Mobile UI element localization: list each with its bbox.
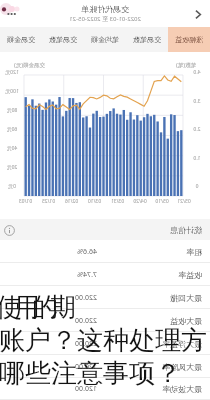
staticText: 04/20 (129, 198, 151, 205)
staticText: 7.74% (77, 270, 97, 280)
staticText: 最大回撤 (170, 293, 202, 303)
button[interactable]: 涨幅收益 (168, 27, 210, 52)
staticText: 220.00 (75, 339, 97, 349)
staticText: 交易代付账单 (81, 4, 129, 14)
staticText: 01/03 (14, 198, 37, 205)
staticText: 最大波动率 (162, 384, 202, 394)
staticText: 4.0 (184, 69, 210, 76)
staticText: 01/25 (37, 198, 60, 205)
staticText: 46.6% (77, 247, 97, 257)
staticText: 220.00 (75, 293, 97, 303)
staticText: 交易金额(元) (14, 61, 45, 69)
button[interactable]: 收益率 (0, 263, 210, 286)
staticText: 交易金额 (7, 35, 35, 44)
button[interactable]: 最大浮盈率 (0, 332, 210, 355)
button[interactable]: 交易笔数 (126, 27, 168, 52)
button[interactable]: 交易金额 (0, 27, 42, 52)
staticText: 账户？这种处理方 (0, 324, 207, 357)
staticText: 60元 (0, 126, 24, 133)
staticText: 收益率 (178, 270, 202, 280)
staticText: 0 (184, 183, 210, 190)
staticText: 120元 (0, 69, 24, 76)
staticText: 交易笔数 (49, 35, 77, 44)
staticText: 05/10 (151, 198, 173, 205)
staticText: 2.0 (184, 126, 210, 133)
staticText: 1.0 (184, 155, 210, 162)
button[interactable]: Info (3, 223, 17, 237)
button[interactable]: 租率 (0, 240, 210, 263)
staticText: 100元 (0, 88, 24, 95)
button[interactable]: 最大回撤 (0, 286, 210, 309)
staticText: 哪些注意事项？ (0, 357, 181, 390)
button[interactable]: 最大风险率 (0, 355, 210, 378)
staticText: 02/16 (60, 198, 83, 205)
button[interactable]: Menu (0, 0, 26, 27)
staticText: 20元 (0, 164, 24, 171)
staticText: 笔数(笔) (176, 61, 196, 69)
staticText: 统计信息 (170, 225, 202, 235)
staticText: 最大收益 (170, 316, 202, 326)
button[interactable]: 笔均金额 (84, 27, 126, 52)
staticText: 220.00 (75, 316, 97, 326)
staticText: 3.0 (184, 98, 210, 105)
staticText: 2022-01-03 至 2022-05-21 (69, 15, 141, 23)
staticText: 交易笔数 (133, 35, 161, 44)
staticText: 租率 (186, 247, 202, 257)
button[interactable]: Back (186, 2, 210, 26)
staticText: 0元 (0, 183, 24, 190)
staticText: 05/21 (173, 198, 195, 205)
staticText: 120.00 (75, 384, 97, 394)
staticText: 80元 (0, 107, 24, 114)
button[interactable]: 最大收益 (0, 309, 210, 332)
staticText: 涨幅收益 (175, 35, 203, 44)
staticText: 最大浮盈率 (162, 339, 202, 349)
staticText: 03/10 (83, 198, 106, 205)
staticText: 最大风险率 (162, 362, 202, 372)
button[interactable]: 最大波动率 (0, 378, 210, 400)
staticText: 03/31 (106, 198, 129, 205)
staticText: 笔均金额 (91, 35, 119, 44)
staticText: 40元 (0, 145, 24, 152)
button[interactable]: 交易笔数 (42, 27, 84, 52)
staticText: 使用的期 (0, 291, 72, 324)
staticText: 120.00 (75, 362, 97, 372)
